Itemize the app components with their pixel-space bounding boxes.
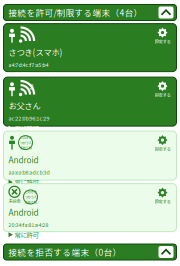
staticText: Android [8,206,38,218]
staticText: a4:7d:4c:f7:a5:b4 [8,61,48,69]
staticText: 設定する [154,146,170,152]
staticText: つかう人 [24,194,36,199]
staticText: 未設定 [8,198,20,204]
button[interactable]: 5 [3,77,176,133]
staticText: ac:22:0b:96:1c:29 [8,115,49,122]
staticText: このきき [19,135,31,140]
staticText: きめてね [24,200,36,205]
staticText: このきき [24,189,36,194]
staticText: 許可中 〜18:00 [15,70,58,79]
staticText: aa:ea:b8:ad:cb:3d [8,169,49,176]
staticText: 20:34:fa:81:e4:28 [8,221,48,229]
staticText: つかう人 [19,140,31,145]
staticText: Android [8,154,38,166]
staticText: さつき(スマホ) [8,46,62,58]
staticText: 設定する [154,38,170,44]
button[interactable]: このきき [3,131,176,187]
button[interactable]: 開閉 [158,6,173,18]
staticText: 常に許可 [15,178,39,187]
staticText: きめてね [19,145,31,150]
staticText: 接続を拒否する端末（0台） [8,246,121,258]
staticText: 設定する [154,92,170,98]
staticText: お父さん [8,100,40,112]
button[interactable]: 未設定 [3,184,176,239]
button[interactable]: さつき(スマホ) [3,24,176,79]
staticText: 接続を許可/制限する端末（4台） [8,6,142,19]
staticText: 常に許可 [15,230,39,239]
button[interactable]: 開閉 [158,246,173,258]
staticText: 常に許可 [15,124,39,133]
staticText: 設定する [154,198,170,204]
staticText: 5 [29,81,33,91]
